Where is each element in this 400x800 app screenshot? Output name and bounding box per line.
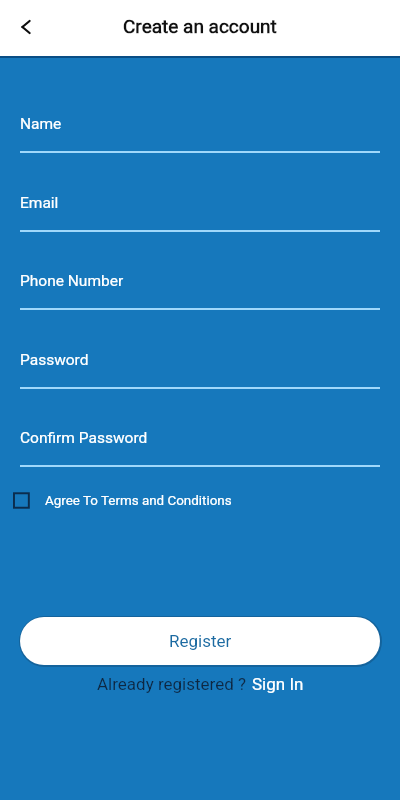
staticText: Name xyxy=(20,115,62,133)
staticText: Create an account xyxy=(123,15,277,37)
button[interactable]: Back xyxy=(8,9,44,45)
staticText: Already registered ? xyxy=(97,674,247,694)
button[interactable]: Sign In xyxy=(249,672,307,696)
staticText: Register xyxy=(169,631,232,651)
staticText: Sign In xyxy=(252,674,304,694)
staticText: Agree To Terms and Conditions xyxy=(45,493,232,509)
staticText: Email xyxy=(20,194,59,212)
button[interactable]: Name xyxy=(20,111,380,153)
button[interactable]: Password xyxy=(20,347,380,389)
button[interactable]: Register xyxy=(20,617,380,665)
staticText: Phone Number xyxy=(20,272,124,290)
button[interactable]: Email xyxy=(20,190,380,232)
button[interactable]: Agree To Terms and Conditions xyxy=(13,490,232,511)
staticText: Password xyxy=(20,351,89,369)
button[interactable]: Phone Number xyxy=(20,268,380,310)
staticText: Confirm Password xyxy=(20,429,148,447)
button[interactable]: Confirm Password xyxy=(20,425,380,467)
